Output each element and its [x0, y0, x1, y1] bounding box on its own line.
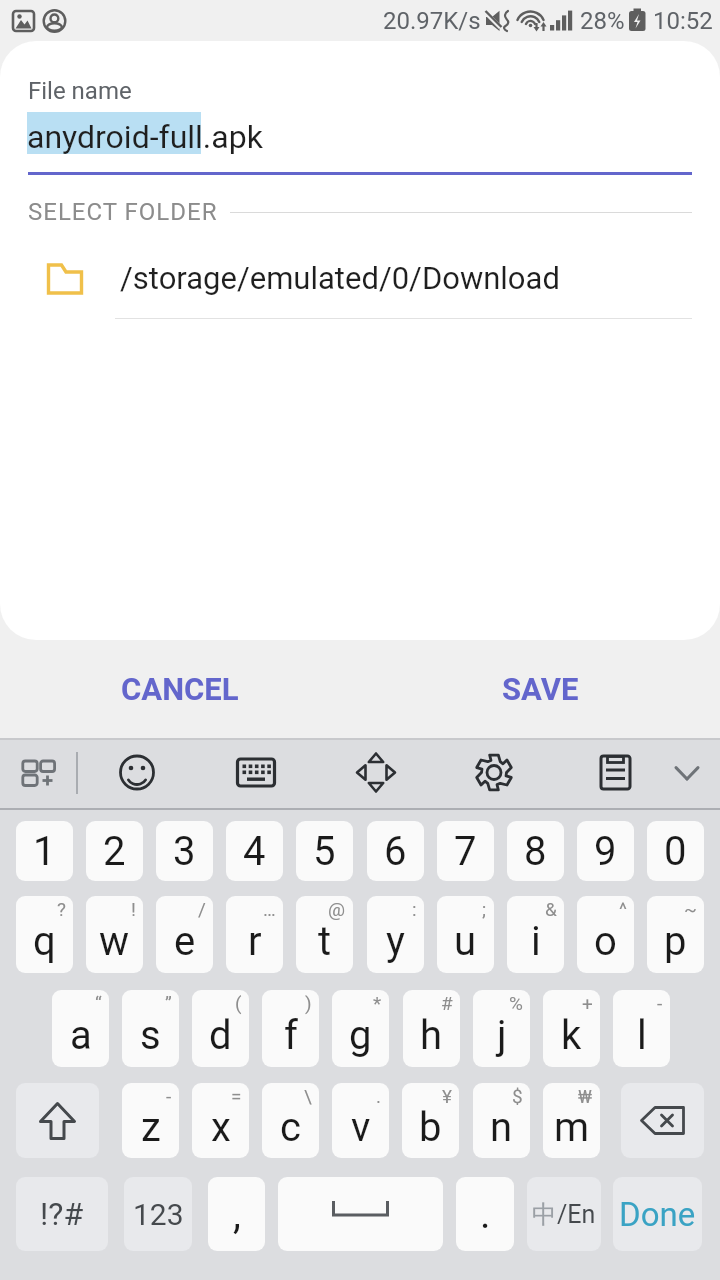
staticText: x [211, 1104, 231, 1151]
button[interactable]: ! [86, 896, 143, 973]
button[interactable]: - [122, 1083, 179, 1158]
staticText: 0 [664, 828, 687, 875]
button[interactable]: $ [473, 1083, 530, 1158]
button[interactable]: Settings [463, 738, 525, 800]
button[interactable]: & [507, 896, 564, 973]
button[interactable]: ? [16, 896, 73, 973]
button[interactable]: 5 [296, 821, 353, 881]
button[interactable]: 4 [226, 821, 283, 881]
staticText: SAVE [502, 671, 579, 707]
staticText: q [33, 918, 56, 965]
staticText: - [657, 992, 663, 1014]
button[interactable]: 6 [367, 821, 424, 881]
button[interactable]: 3 [156, 821, 213, 881]
button[interactable]: 中 [527, 1177, 601, 1251]
staticText: \ [304, 1085, 312, 1107]
staticText: ~ [684, 898, 697, 920]
button[interactable]: Space [278, 1177, 443, 1251]
staticText: * [373, 992, 382, 1014]
staticText: CANCEL [121, 671, 239, 707]
staticText: anydroid-full.apk [27, 118, 263, 156]
button[interactable]: SAVE [360, 640, 720, 738]
staticText: t [318, 918, 332, 965]
staticText: ) [305, 992, 312, 1014]
staticText: / [198, 898, 206, 920]
staticText: … [263, 898, 276, 920]
staticText: p [664, 918, 687, 965]
button[interactable]: 7 [437, 821, 494, 881]
staticText: 2 [103, 828, 126, 875]
button[interactable]: @ [296, 896, 353, 973]
button[interactable]: : [367, 896, 424, 973]
button[interactable]: ) [262, 990, 319, 1067]
button[interactable]: Shift [16, 1083, 99, 1158]
button[interactable]: * [332, 990, 389, 1067]
button[interactable]: “ [52, 990, 109, 1067]
button[interactable]: ( [192, 990, 249, 1067]
button[interactable]: , [208, 1177, 265, 1251]
button[interactable]: CANCEL [0, 640, 360, 738]
button[interactable]: Done [613, 1177, 702, 1251]
button[interactable]: - [613, 990, 670, 1067]
button[interactable]: 123 [124, 1177, 192, 1251]
staticText: 1 [33, 828, 56, 875]
button[interactable]: 2 [86, 821, 143, 881]
button[interactable]: # [403, 990, 460, 1067]
staticText: 123 [133, 1197, 184, 1232]
button[interactable]: 1 [16, 821, 73, 881]
staticText: @ [328, 898, 346, 920]
staticText: # [441, 992, 453, 1014]
staticText: g [349, 1012, 372, 1059]
staticText: w [99, 918, 130, 965]
button[interactable]: \ [262, 1083, 319, 1158]
button[interactable]: + [543, 990, 600, 1067]
button[interactable]: / [156, 896, 213, 973]
staticText: l [637, 1012, 647, 1059]
staticText: i [531, 918, 541, 965]
staticText: 8 [524, 828, 547, 875]
button[interactable]: . [332, 1083, 389, 1158]
staticText: Done [619, 1195, 696, 1234]
staticText: !?# [40, 1195, 84, 1233]
button[interactable]: 0 [647, 821, 704, 881]
staticText: /En [557, 1200, 596, 1229]
button[interactable]: = [192, 1083, 249, 1158]
button[interactable]: 9 [577, 821, 634, 881]
button[interactable]: Move cursor [345, 738, 407, 800]
staticText: File name [28, 77, 132, 105]
button[interactable]: Hide keyboard [657, 742, 717, 802]
button[interactable]: ” [122, 990, 179, 1067]
button[interactable]: 8 [507, 821, 564, 881]
button[interactable]: ; [437, 896, 494, 973]
button[interactable]: Add sticker [8, 742, 70, 804]
button[interactable]: . [456, 1177, 514, 1251]
staticText: ; [482, 898, 487, 920]
staticText: 6 [384, 828, 407, 875]
button[interactable]: ~ [647, 896, 704, 973]
button[interactable]: Emoji [106, 738, 168, 800]
button[interactable]: ^ [577, 896, 634, 973]
staticText: c [280, 1104, 301, 1151]
staticText: “ [95, 992, 102, 1014]
button[interactable]: Clipboard [585, 738, 647, 800]
button[interactable]: Backspace [621, 1083, 704, 1158]
button[interactable]: !?# [16, 1177, 108, 1251]
button[interactable]: % [473, 990, 530, 1067]
button[interactable]: Keyboard layout [225, 738, 287, 800]
button[interactable]: /storage/emulated/0/Download [0, 240, 720, 320]
staticText: 中 [532, 1199, 557, 1230]
staticText: , [233, 1191, 241, 1238]
staticText: ( [235, 992, 242, 1014]
button[interactable]: ₩ [543, 1083, 600, 1158]
staticText: u [454, 918, 477, 965]
button[interactable]: … [226, 896, 283, 973]
staticText: 28% [580, 7, 625, 35]
staticText: : [412, 898, 417, 920]
staticText: /storage/emulated/0/Download [120, 260, 560, 296]
staticText: y [386, 918, 405, 965]
staticText: ¥ [442, 1085, 452, 1107]
staticText: . [376, 1085, 382, 1107]
staticText: a [70, 1012, 92, 1059]
staticText: m [554, 1104, 590, 1151]
button[interactable]: ¥ [402, 1083, 459, 1158]
